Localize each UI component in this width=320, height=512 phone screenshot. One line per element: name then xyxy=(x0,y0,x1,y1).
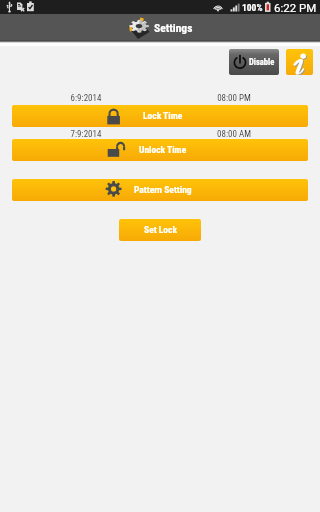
staticText: 08:00 PM xyxy=(160,93,308,104)
button[interactable]: Unlock Time xyxy=(12,139,308,161)
staticText: Set Lock xyxy=(144,224,177,235)
staticText: Pattern Setting xyxy=(134,184,192,195)
button[interactable]: Disable xyxy=(229,49,279,75)
staticText: 100% xyxy=(242,2,263,13)
staticText: Disable xyxy=(249,57,275,67)
staticText: 7:9:2014 xyxy=(12,129,160,140)
button[interactable]: Info xyxy=(286,49,313,75)
button[interactable]: Pattern Setting xyxy=(12,179,308,201)
staticText: Unlock Time xyxy=(139,144,187,155)
button[interactable]: Lock Time xyxy=(12,105,308,127)
staticText: 6:22 PM xyxy=(274,1,317,14)
staticText: 08:00 AM xyxy=(160,129,308,140)
staticText: Lock Time xyxy=(143,110,183,121)
staticText: Settings xyxy=(154,21,193,34)
button[interactable]: Set Lock xyxy=(119,219,201,241)
staticText: 6:9:2014 xyxy=(12,93,160,104)
